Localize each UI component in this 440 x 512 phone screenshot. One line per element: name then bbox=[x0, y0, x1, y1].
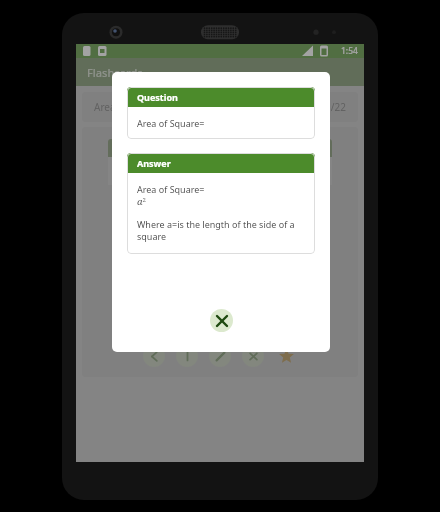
button[interactable]: Edit bbox=[209, 345, 231, 367]
staticText: Flashcards bbox=[87, 65, 143, 80]
staticText: 1:54 bbox=[341, 45, 358, 57]
staticText: Area of Square= bbox=[116, 165, 184, 177]
button[interactable]: Favourite bbox=[275, 345, 297, 367]
staticText: Answer bbox=[137, 157, 171, 169]
staticText: Area bbox=[94, 100, 116, 114]
button[interactable]: Previous bbox=[143, 345, 165, 367]
button[interactable]: Close bbox=[210, 309, 233, 332]
staticText: Question bbox=[137, 91, 178, 103]
staticText: 1/22 bbox=[325, 100, 346, 114]
staticText: Question bbox=[116, 142, 157, 154]
staticText: Where a=is the length of the side of a s… bbox=[137, 218, 309, 242]
staticText: a2 bbox=[137, 195, 146, 208]
button[interactable]: Wrong bbox=[242, 345, 264, 367]
staticText: Area of Square= bbox=[137, 117, 205, 129]
staticText: Area of Square= bbox=[137, 183, 205, 195]
button[interactable]: Correct bbox=[176, 345, 198, 367]
